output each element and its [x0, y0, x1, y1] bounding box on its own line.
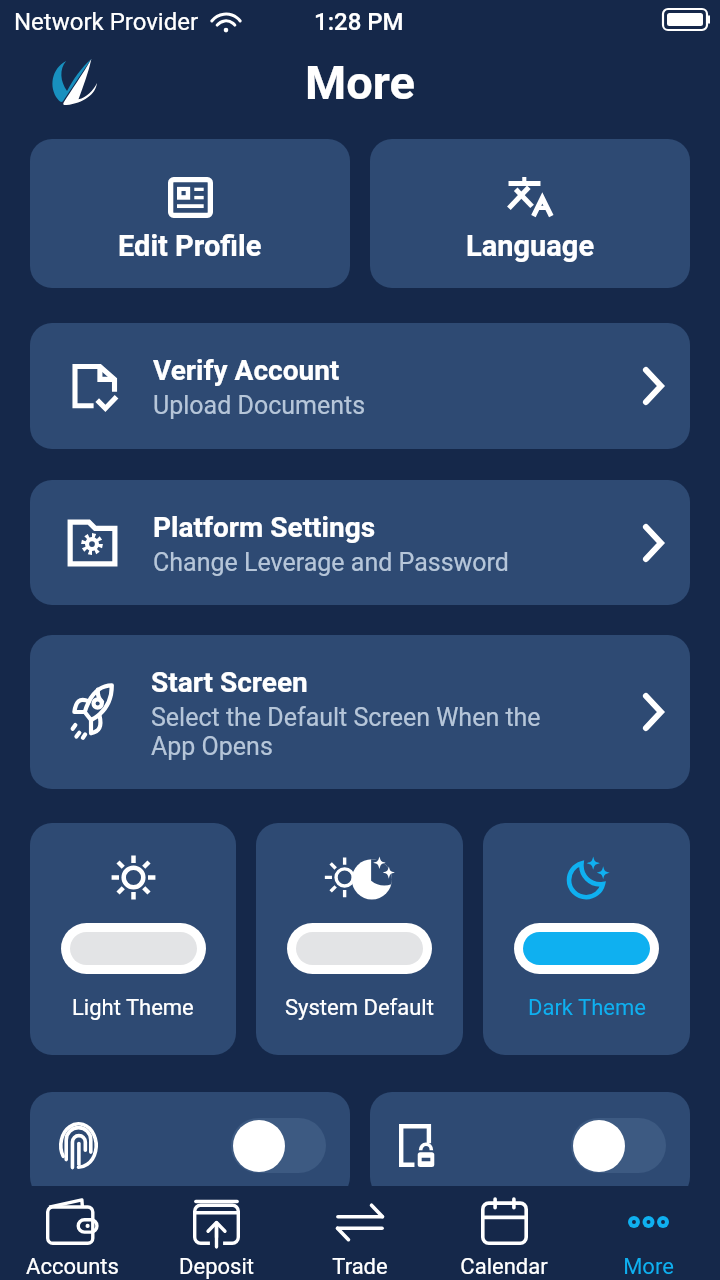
button[interactable]: Start Screen	[30, 635, 690, 789]
staticText: System Default	[285, 995, 434, 1021]
button[interactable]: Trade	[288, 1186, 432, 1280]
button[interactable]: Light Theme	[30, 823, 236, 1055]
staticText: Change Leverage and Password	[153, 548, 509, 577]
staticText: Deposit	[179, 1254, 254, 1280]
button[interactable]: Verify Account	[30, 323, 690, 449]
staticText: More	[305, 55, 415, 110]
button[interactable]: Edit Profile	[30, 139, 350, 288]
staticText: Select the Default Screen When the App O…	[151, 703, 541, 761]
button[interactable]: Platform Settings	[30, 480, 690, 605]
staticText: Light Theme	[72, 995, 194, 1021]
staticText: Accounts	[26, 1254, 119, 1280]
staticText: 1:28 PM	[314, 8, 404, 36]
staticText: Network Provider	[14, 8, 199, 36]
button[interactable]: System Default	[256, 823, 463, 1055]
other: App logo	[50, 58, 96, 105]
staticText: Dark Theme	[528, 995, 646, 1021]
button[interactable]: Language	[370, 139, 690, 288]
staticText: Edit Profile	[118, 229, 262, 263]
button[interactable]: Screen lock	[370, 1092, 690, 1199]
staticText: Language	[466, 229, 595, 263]
staticText: Start Screen	[151, 666, 308, 699]
staticText: Calendar	[460, 1254, 548, 1280]
staticText: Verify Account	[153, 354, 340, 387]
button[interactable]: Biometric login	[30, 1092, 350, 1199]
staticText: Trade	[332, 1254, 388, 1280]
button[interactable]: Deposit	[144, 1186, 288, 1280]
staticText: Platform Settings	[153, 511, 376, 544]
button[interactable]: Dark Theme	[483, 823, 690, 1055]
button[interactable]: Accounts	[0, 1186, 144, 1280]
button[interactable]: More	[576, 1186, 720, 1280]
button[interactable]: Calendar	[432, 1186, 576, 1280]
staticText: More	[623, 1254, 674, 1280]
staticText: Upload Documents	[153, 391, 366, 420]
